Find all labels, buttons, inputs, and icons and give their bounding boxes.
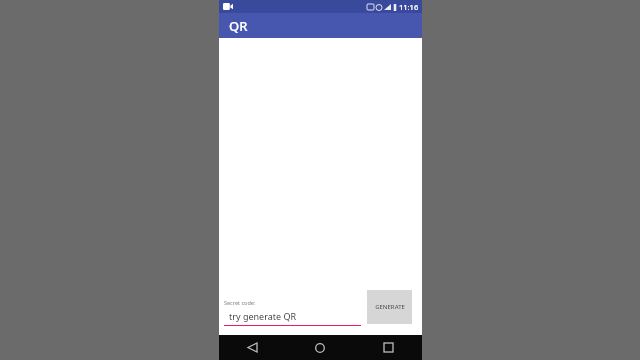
staticText: GENERATE — [375, 303, 405, 311]
button[interactable]: Home — [286, 335, 354, 360]
button[interactable]: Recent apps — [354, 335, 422, 360]
staticText: 11:16 — [399, 2, 419, 12]
staticText: Secret code: — [224, 299, 256, 306]
button[interactable]: Back — [219, 335, 286, 360]
button[interactable]: try generate QR — [224, 310, 361, 326]
staticText: QR — [229, 17, 248, 35]
button[interactable]: GENERATE — [367, 290, 412, 324]
staticText: try generate QR — [229, 310, 297, 322]
